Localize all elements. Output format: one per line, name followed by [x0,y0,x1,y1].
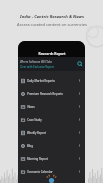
staticText: Daily Market Reports [27,79,55,83]
staticText: India - Centric Research & News [20,13,84,19]
button[interactable]: Premium Research Reports [18,87,85,100]
staticText: Over with Exclusive Report [20,65,54,69]
staticText: Where Software Will Take [20,60,52,64]
button[interactable]: Where Software Will Take [18,57,85,71]
button[interactable]: News [18,100,85,113]
staticText: Economic Calendar [27,170,53,174]
staticText: Premium Research Reports [27,92,63,96]
staticText: Morning Report [27,157,48,161]
staticText: Research Report [38,51,66,55]
staticText: Access curated content on currencies [17,22,87,27]
button[interactable]: Blog [18,139,85,152]
staticText: Case Study [27,118,42,122]
staticText: Blog [27,144,33,148]
staticText: News [27,105,35,109]
other: Search [77,61,83,67]
button[interactable]: Case Study [18,113,85,126]
button[interactable]: Economic Calendar [18,165,85,178]
staticText: Weekly Report [27,131,46,135]
button[interactable]: Weekly Report [18,126,85,139]
button[interactable]: Daily Market Reports [18,74,85,87]
button[interactable]: Morning Report [18,152,85,165]
